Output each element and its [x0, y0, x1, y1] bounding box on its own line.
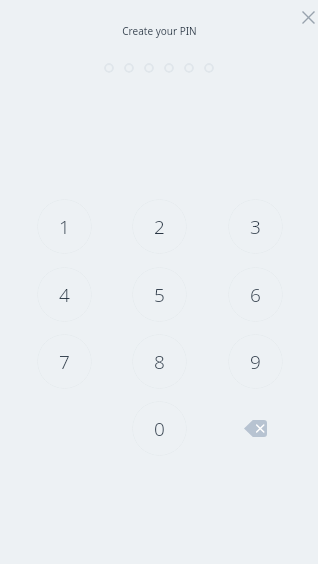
staticText: 5: [154, 282, 165, 308]
staticText: 7: [59, 349, 70, 375]
button[interactable]: 3: [228, 199, 283, 254]
button[interactable]: 8: [132, 334, 187, 389]
button[interactable]: 0: [132, 401, 187, 456]
button[interactable]: 6: [228, 267, 283, 322]
staticText: 3: [250, 214, 261, 240]
button[interactable]: Close: [294, 3, 318, 31]
staticText: 8: [154, 349, 165, 375]
button[interactable]: 4: [37, 267, 92, 322]
staticText: 6: [250, 282, 261, 308]
staticText: 0: [154, 416, 165, 442]
staticText: 4: [59, 282, 70, 308]
button[interactable]: 2: [132, 199, 187, 254]
staticText: 2: [154, 214, 165, 240]
button[interactable]: 5: [132, 267, 187, 322]
button[interactable]: 7: [37, 334, 92, 389]
button[interactable]: 9: [228, 334, 283, 389]
staticText: 9: [250, 349, 261, 375]
button[interactable]: Backspace: [228, 401, 283, 456]
button[interactable]: 1: [37, 199, 92, 254]
staticText: 1: [59, 214, 70, 240]
staticText: Create your PIN: [122, 24, 197, 38]
